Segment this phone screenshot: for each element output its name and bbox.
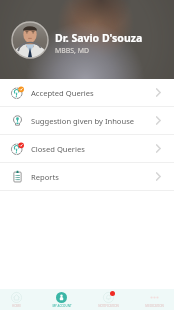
button[interactable]: Suggestion given by Inhouse	[0, 107, 174, 134]
button[interactable]: Closed Queries	[0, 135, 174, 162]
staticText: MY ACCOUNT	[52, 304, 72, 308]
button[interactable]: Accepted Queries	[0, 79, 174, 106]
staticText: Reports	[31, 172, 59, 182]
staticText: Suggestion given by Inhouse	[31, 116, 135, 126]
staticText: MBBS, MD	[55, 46, 89, 55]
button[interactable]: NOTIFICATION	[86, 289, 130, 310]
button[interactable]: HOME	[0, 289, 43, 310]
staticText: Closed Queries	[31, 144, 85, 154]
staticText: HOME	[12, 304, 21, 308]
button[interactable]: MEDICATION	[130, 289, 174, 310]
button[interactable]: Reports	[0, 163, 174, 190]
staticText: Accepted Queries	[31, 88, 94, 98]
staticText: NOTIFICATION	[98, 304, 119, 308]
staticText: MEDICATION	[145, 304, 164, 308]
button[interactable]: MY ACCOUNT	[43, 289, 86, 310]
staticText: Dr. Savio D'souza	[55, 31, 143, 45]
